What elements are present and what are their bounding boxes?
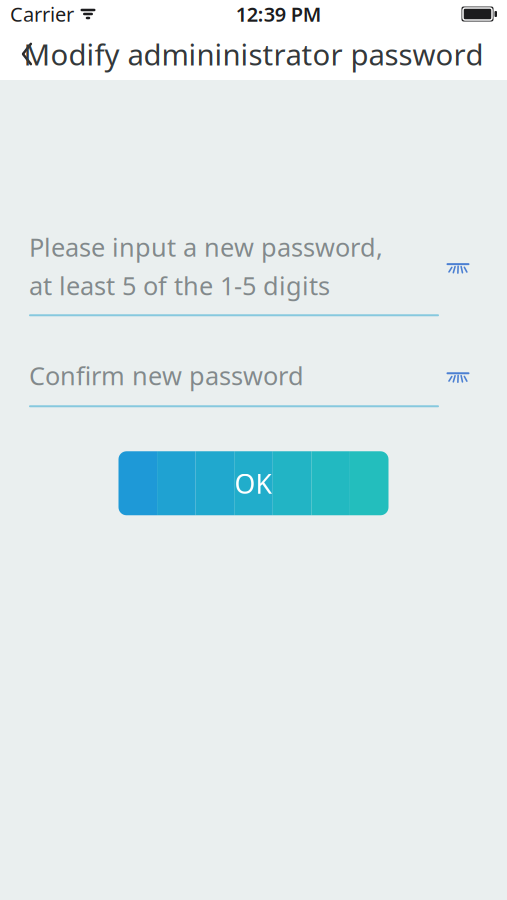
staticText: Please input a new password, (29, 230, 383, 264)
button[interactable]: Back (0, 28, 54, 80)
staticText: at least 5 of the 1-5 digits (29, 269, 330, 302)
staticText: Carrier (10, 1, 74, 27)
staticText: Modify admininistrator password (23, 34, 483, 73)
button[interactable]: Show new password (438, 249, 478, 283)
staticText: 12:39 PM (236, 1, 322, 27)
button[interactable]: OK (118, 451, 388, 515)
staticText: Confirm new password (29, 359, 304, 392)
button[interactable]: Show confirm password (438, 358, 478, 392)
staticText: OK (234, 466, 272, 501)
